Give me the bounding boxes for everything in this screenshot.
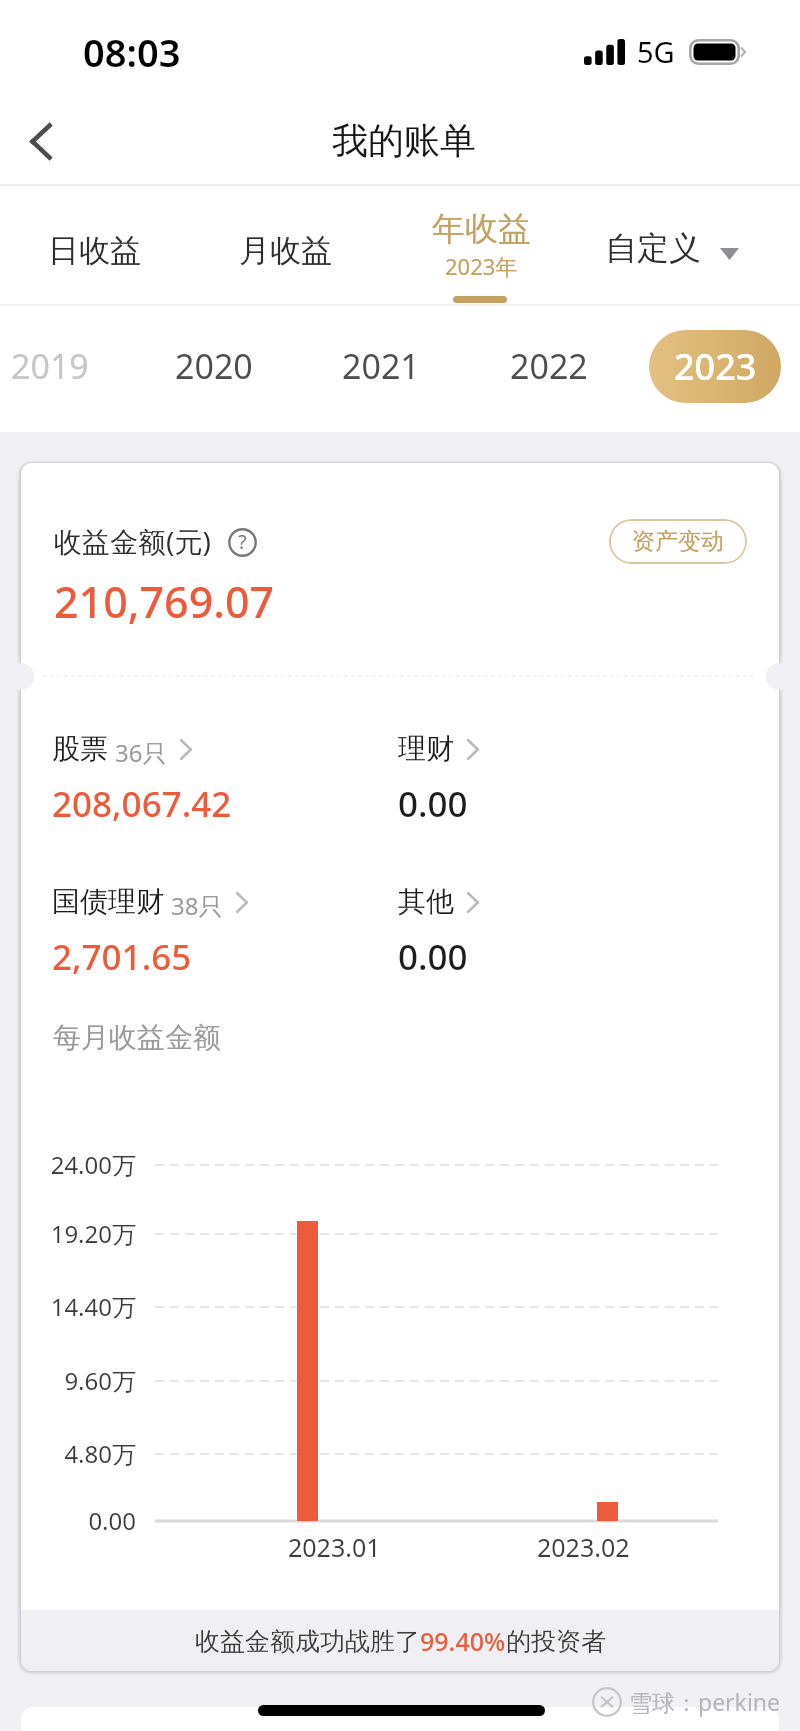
staticText: 月收益 — [239, 231, 332, 270]
staticText: 0.00 — [88, 1504, 136, 1537]
button[interactable]: 股票 — [52, 731, 372, 828]
staticText: 0.00 — [398, 933, 468, 981]
staticText: 收益金额成功战胜了 — [195, 1626, 420, 1657]
button[interactable]: 理财 — [398, 731, 718, 828]
button[interactable]: 其他 — [398, 884, 718, 981]
staticText: 210,769.07 — [54, 572, 275, 631]
staticText: 2023年 — [445, 251, 518, 281]
staticText: 24.00万 — [50, 1148, 136, 1181]
staticText: 年收益 — [432, 208, 531, 250]
button[interactable]: 2019 — [0, 318, 105, 414]
button[interactable]: Help — [228, 528, 257, 557]
staticText: 2019 — [11, 343, 89, 389]
staticText: 2023.01 — [288, 1530, 381, 1564]
staticText: 5G — [637, 32, 675, 71]
staticText: 理财 — [398, 731, 454, 766]
button[interactable]: 2023 — [649, 330, 781, 403]
button[interactable]: 2020 — [159, 318, 269, 414]
staticText: 其他 — [398, 884, 454, 919]
staticText: 9.60万 — [64, 1364, 136, 1397]
button[interactable]: 2021 — [326, 318, 436, 414]
staticText: 2,701.65 — [52, 933, 192, 981]
button[interactable]: 日收益 — [22, 185, 164, 304]
button[interactable]: 资产变动 — [609, 519, 747, 564]
staticText: 自定义 — [605, 228, 701, 268]
staticText: 208,067.42 — [52, 780, 232, 828]
button[interactable]: 2022 — [494, 318, 604, 414]
staticText: 2022 — [510, 343, 588, 389]
staticText: 的投资者 — [506, 1626, 606, 1657]
button[interactable]: Back — [11, 111, 71, 171]
staticText: 收益金额(元) — [54, 522, 211, 560]
staticText: 0.00 — [398, 780, 468, 828]
staticText: 08:03 — [83, 26, 181, 78]
staticText: 国债理财 — [52, 884, 164, 919]
button[interactable]: 国债理财 — [52, 884, 372, 981]
staticText: 19.20万 — [50, 1217, 136, 1250]
staticText: 2021 — [342, 343, 420, 389]
button[interactable]: 月收益 — [213, 185, 355, 304]
staticText: 我的账单 — [332, 118, 476, 163]
staticText: 38只 — [171, 889, 223, 922]
staticText: 资产变动 — [632, 527, 724, 556]
staticText: 每月收益金额 — [53, 1020, 221, 1055]
button[interactable]: 自定义 — [605, 228, 742, 268]
button[interactable]: 年收益 — [420, 185, 540, 304]
staticText: 2020 — [175, 343, 253, 389]
staticText: 2023 — [674, 342, 757, 391]
staticText: 日收益 — [48, 231, 141, 270]
staticText: 99.40% — [420, 1624, 506, 1658]
staticText: 4.80万 — [64, 1437, 136, 1470]
staticText: 14.40万 — [50, 1290, 136, 1323]
staticText: ? — [238, 528, 247, 555]
staticText: 股票 — [52, 731, 108, 766]
staticText: 2023.02 — [537, 1530, 630, 1564]
staticText: 36只 — [115, 736, 167, 769]
staticText: 雪球：perkine — [629, 1686, 781, 1717]
